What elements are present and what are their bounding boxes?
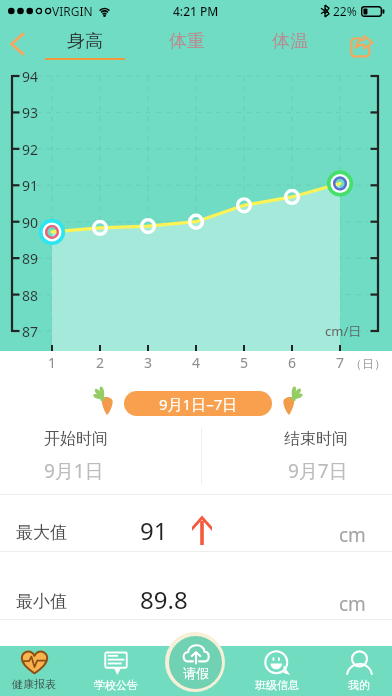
staticText: 请假 bbox=[183, 665, 209, 681]
staticText: VIRGIN bbox=[52, 3, 93, 19]
staticText: 9月7日 bbox=[288, 458, 348, 484]
staticText: cm/日 bbox=[325, 322, 362, 340]
staticText: 88 bbox=[22, 286, 39, 305]
staticText: 94 bbox=[22, 67, 39, 86]
button[interactable]: Back bbox=[0, 22, 34, 66]
staticText: 93 bbox=[22, 103, 39, 122]
staticText: cm bbox=[339, 522, 366, 548]
staticText: 91 bbox=[140, 514, 168, 540]
staticText: 9月1日–7日 bbox=[159, 394, 238, 414]
staticText: （日） bbox=[350, 356, 386, 371]
staticText: 9月1日 bbox=[44, 458, 104, 484]
staticText: 身高 bbox=[67, 30, 103, 53]
staticText: 健康报表 bbox=[12, 677, 56, 691]
staticText: 学校公告 bbox=[94, 678, 138, 692]
button[interactable]: 体重 bbox=[151, 22, 223, 66]
staticText: cm bbox=[339, 591, 366, 617]
staticText: 我的 bbox=[348, 678, 370, 692]
button[interactable]: 学校公告 bbox=[77, 646, 155, 696]
staticText: 1 bbox=[48, 353, 57, 372]
staticText: 92 bbox=[22, 140, 39, 159]
button[interactable]: 身高 bbox=[45, 22, 125, 66]
staticText: 90 bbox=[22, 213, 39, 232]
button[interactable]: 最大值 bbox=[0, 524, 392, 550]
button[interactable]: Share bbox=[340, 22, 384, 66]
staticText: 最大值 bbox=[16, 522, 67, 543]
button[interactable]: 班级信息 bbox=[238, 646, 316, 696]
button[interactable]: 请假 bbox=[165, 632, 225, 692]
staticText: 89 bbox=[22, 249, 39, 268]
staticText: 4 bbox=[192, 353, 201, 372]
staticText: 结束时间 bbox=[284, 429, 348, 449]
staticText: 5 bbox=[240, 353, 249, 372]
staticText: 6 bbox=[288, 353, 297, 372]
button[interactable]: 最小值 bbox=[0, 593, 392, 619]
staticText: 2 bbox=[96, 353, 105, 372]
button[interactable]: 9月1日–7日 bbox=[124, 391, 272, 416]
button[interactable]: 我的 bbox=[320, 646, 392, 696]
staticText: 体重 bbox=[169, 30, 205, 53]
staticText: 开始时间 bbox=[44, 429, 108, 449]
staticText: 91 bbox=[22, 176, 39, 195]
staticText: 3 bbox=[144, 353, 153, 372]
staticText: 7 bbox=[336, 353, 345, 372]
staticText: 22% bbox=[333, 3, 357, 19]
button[interactable]: 健康报表 bbox=[0, 646, 73, 696]
staticText: 班级信息 bbox=[255, 678, 299, 692]
staticText: 最小值 bbox=[16, 591, 67, 612]
staticText: 89.8 bbox=[140, 583, 188, 609]
staticText: 87 bbox=[22, 322, 39, 341]
staticText: 4:21 PM bbox=[173, 3, 219, 19]
button[interactable]: 体温 bbox=[254, 22, 326, 66]
staticText: 体温 bbox=[272, 30, 308, 53]
